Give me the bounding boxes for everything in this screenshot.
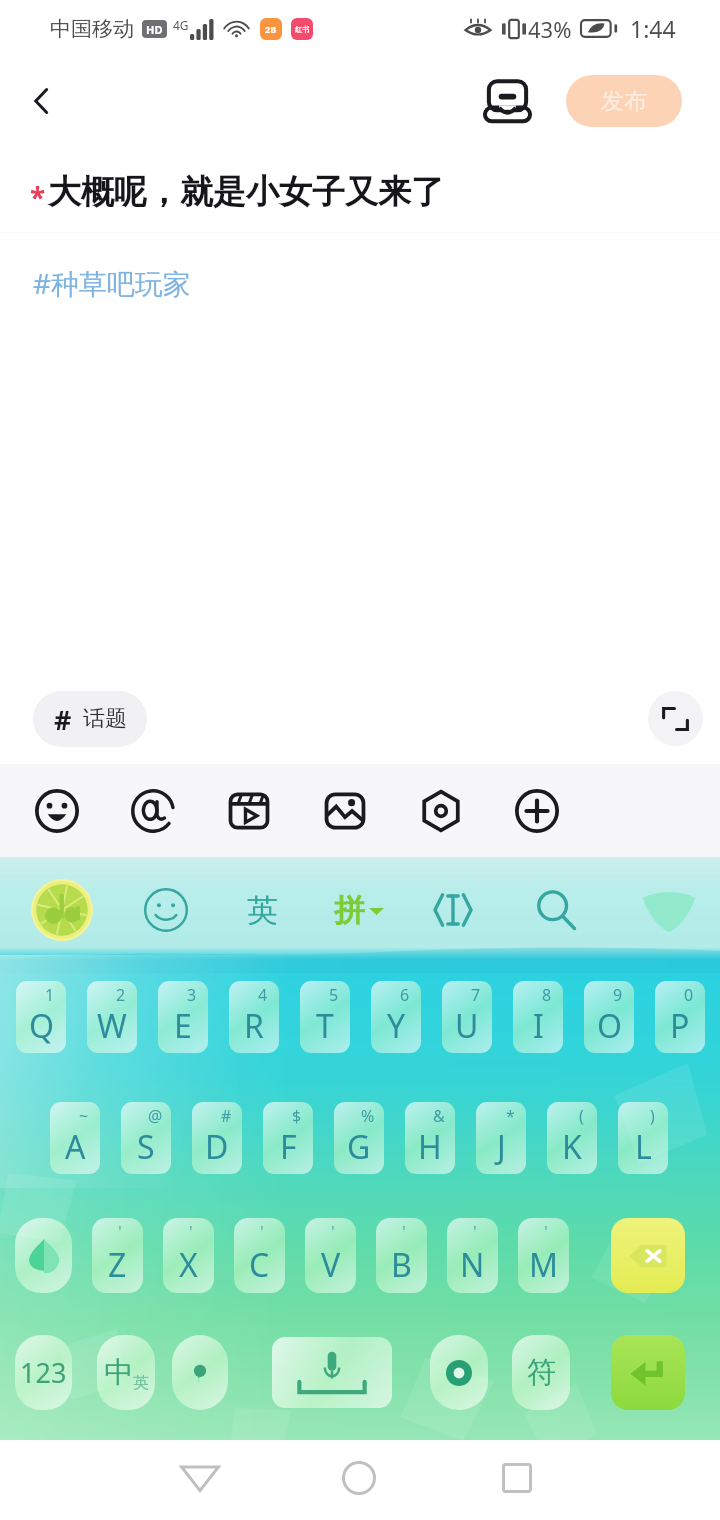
staticText: * bbox=[30, 178, 46, 216]
button[interactable]: ~ bbox=[50, 1102, 100, 1174]
staticText: 红书 bbox=[295, 25, 309, 34]
staticText: W bbox=[97, 1004, 127, 1048]
button[interactable]: # bbox=[192, 1102, 242, 1174]
staticText: ' bbox=[118, 1220, 122, 1243]
staticText: E bbox=[174, 1004, 192, 1048]
staticText: Q bbox=[29, 1004, 54, 1048]
button[interactable]: Comma bbox=[172, 1335, 228, 1410]
staticText: 2 bbox=[116, 984, 126, 1006]
staticText: 中 bbox=[104, 1354, 133, 1391]
staticText: 6 bbox=[400, 984, 410, 1006]
staticText: 7 bbox=[471, 984, 481, 1006]
button[interactable]: Recents bbox=[482, 1443, 552, 1513]
staticText: K bbox=[562, 1125, 582, 1169]
button[interactable]: ' bbox=[518, 1218, 569, 1293]
staticText: C bbox=[249, 1243, 270, 1287]
button[interactable]: 123 bbox=[15, 1335, 72, 1410]
button[interactable]: Enter bbox=[611, 1335, 685, 1410]
staticText: 1:44 bbox=[630, 13, 676, 44]
staticText: 4 bbox=[258, 984, 268, 1006]
button[interactable]: # bbox=[33, 691, 147, 747]
staticText: 123 bbox=[20, 1354, 67, 1391]
button[interactable]: 3 bbox=[158, 981, 208, 1053]
staticText: * bbox=[506, 1105, 515, 1127]
button[interactable]: Drafts bbox=[480, 74, 534, 128]
button[interactable]: $ bbox=[263, 1102, 313, 1174]
button[interactable]: Image bbox=[309, 775, 381, 847]
button[interactable]: 4 bbox=[229, 981, 279, 1053]
staticText: ' bbox=[402, 1220, 406, 1243]
button[interactable]: 拼 bbox=[334, 881, 384, 939]
button[interactable]: % bbox=[334, 1102, 384, 1174]
staticText: 43% bbox=[528, 14, 572, 44]
button[interactable]: Shift bbox=[15, 1218, 72, 1293]
button[interactable]: 8 bbox=[513, 981, 563, 1053]
button[interactable]: * bbox=[476, 1102, 526, 1174]
button[interactable]: Back bbox=[165, 1443, 235, 1513]
staticText: 4G bbox=[173, 17, 189, 33]
button[interactable]: 2 bbox=[87, 981, 137, 1053]
button[interactable]: #种草吧玩家 bbox=[33, 264, 192, 302]
button[interactable]: Sticker bbox=[405, 775, 477, 847]
button[interactable]: ) bbox=[618, 1102, 668, 1174]
staticText: HD bbox=[146, 22, 163, 37]
staticText: 符 bbox=[527, 1354, 556, 1391]
staticText: Y bbox=[387, 1004, 406, 1048]
button[interactable]: 7 bbox=[442, 981, 492, 1053]
staticText: 英 bbox=[133, 1373, 149, 1393]
staticText: & bbox=[433, 1105, 445, 1127]
button[interactable]: Search bbox=[527, 881, 585, 939]
button[interactable]: 发布 bbox=[566, 75, 682, 127]
button[interactable]: Emoji bbox=[137, 881, 195, 939]
staticText: D bbox=[205, 1125, 229, 1169]
button[interactable]: 6 bbox=[371, 981, 421, 1053]
button[interactable]: ( bbox=[547, 1102, 597, 1174]
button[interactable]: 5 bbox=[300, 981, 350, 1053]
staticText: T bbox=[316, 1004, 334, 1048]
button[interactable]: Baidu input bbox=[30, 878, 94, 942]
staticText: 英 bbox=[247, 891, 278, 930]
button[interactable]: Backspace bbox=[611, 1218, 685, 1293]
staticText: P bbox=[670, 1004, 690, 1048]
button[interactable]: ' bbox=[305, 1218, 356, 1293]
button[interactable]: Video bbox=[213, 775, 285, 847]
button[interactable]: ' bbox=[376, 1218, 427, 1293]
staticText: J bbox=[497, 1125, 506, 1169]
button[interactable]: Mention bbox=[117, 775, 189, 847]
staticText: H bbox=[418, 1125, 442, 1169]
staticText: N bbox=[460, 1243, 485, 1287]
button[interactable]: & bbox=[405, 1102, 455, 1174]
button[interactable]: 0 bbox=[655, 981, 705, 1053]
button[interactable]: ' bbox=[447, 1218, 498, 1293]
button[interactable]: Emoji bbox=[21, 775, 93, 847]
button[interactable]: ' bbox=[163, 1218, 214, 1293]
button[interactable]: Home bbox=[324, 1443, 394, 1513]
button[interactable]: 1 bbox=[16, 981, 66, 1053]
button[interactable]: Space bbox=[272, 1337, 392, 1408]
button[interactable]: ' bbox=[92, 1218, 143, 1293]
staticText: 1 bbox=[45, 984, 55, 1006]
button[interactable]: Theme bbox=[638, 880, 700, 942]
staticText: S bbox=[137, 1125, 155, 1169]
staticText: 话题 bbox=[83, 705, 127, 733]
button[interactable]: Cursor control bbox=[424, 881, 482, 939]
staticText: 拼 bbox=[334, 891, 365, 930]
button[interactable]: Expand bbox=[648, 691, 703, 746]
staticText: # bbox=[221, 1105, 232, 1127]
staticText: X bbox=[179, 1243, 198, 1287]
staticText: ' bbox=[189, 1220, 193, 1243]
button[interactable]: Back bbox=[14, 73, 70, 129]
button[interactable]: More bbox=[501, 775, 573, 847]
button[interactable]: ' bbox=[234, 1218, 285, 1293]
staticText: 3 bbox=[187, 984, 197, 1006]
button[interactable]: 9 bbox=[584, 981, 634, 1053]
button[interactable]: @ bbox=[121, 1102, 171, 1174]
button[interactable]: Voice bbox=[430, 1335, 488, 1410]
staticText: 大概呢，就是小女子又来了 bbox=[48, 171, 444, 213]
staticText: R bbox=[244, 1004, 264, 1048]
button[interactable]: 中 bbox=[97, 1335, 155, 1410]
staticText: 中国移动 bbox=[50, 16, 134, 42]
button[interactable]: 符 bbox=[512, 1335, 570, 1410]
button[interactable]: 英 bbox=[233, 881, 291, 939]
staticText: ' bbox=[544, 1220, 548, 1243]
